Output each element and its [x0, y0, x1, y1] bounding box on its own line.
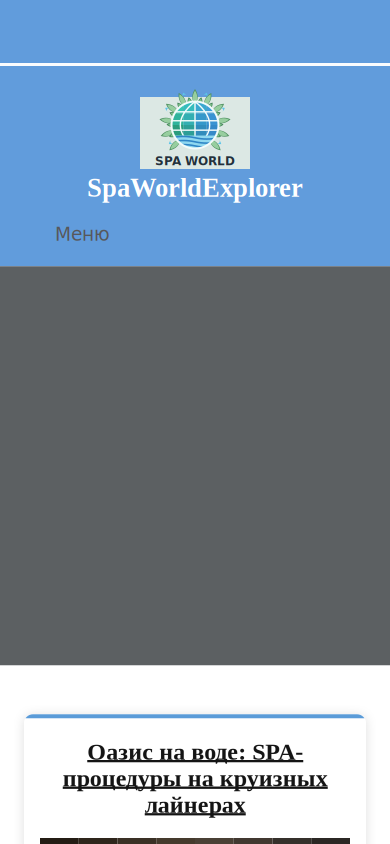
staticText: Оазис на воде: SPA-процедуры на круизных… — [62, 738, 327, 818]
staticText: SPA WORLD — [155, 154, 235, 168]
staticText: SpaWorldExplorer — [87, 173, 303, 202]
staticText: Меню — [55, 223, 110, 245]
button[interactable]: Меню — [55, 223, 110, 245]
button[interactable]: Оазис на воде: SPA-процедуры на круизных… — [24, 724, 366, 838]
